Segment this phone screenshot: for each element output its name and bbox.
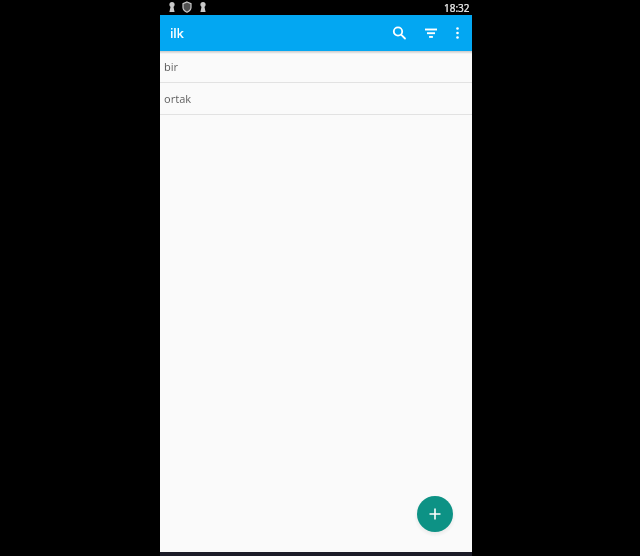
button[interactable] bbox=[417, 496, 453, 532]
staticText: 18:32 bbox=[444, 1, 470, 15]
button[interactable] bbox=[411, 15, 443, 51]
staticText: bir bbox=[164, 59, 179, 74]
button[interactable] bbox=[379, 15, 411, 51]
button[interactable]: bir bbox=[160, 51, 472, 83]
staticText: ortak bbox=[164, 91, 192, 106]
staticText: ilk bbox=[170, 24, 184, 42]
button[interactable] bbox=[443, 15, 472, 51]
button[interactable]: ortak bbox=[160, 83, 472, 115]
